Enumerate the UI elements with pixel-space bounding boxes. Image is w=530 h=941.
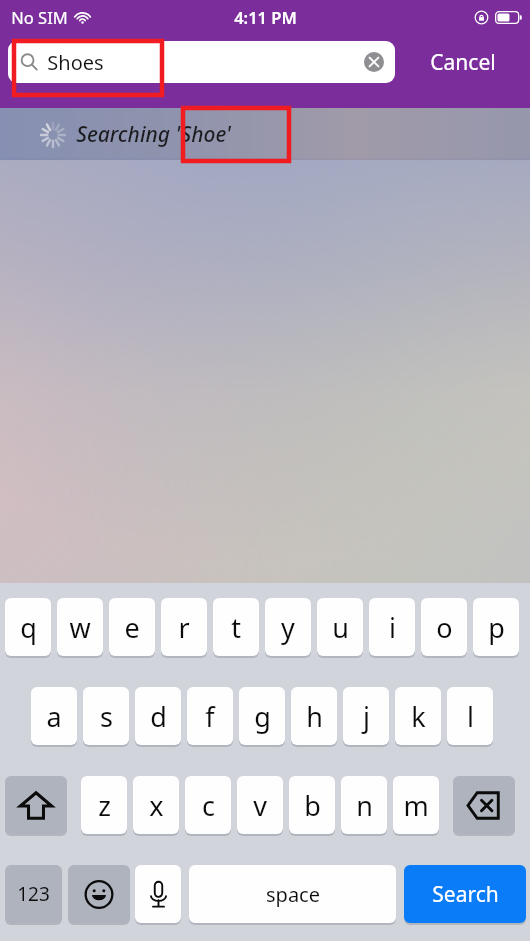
staticText: Shoes	[47, 49, 104, 76]
button[interactable]: e	[109, 597, 155, 659]
button[interactable]: o	[421, 597, 467, 659]
staticText: 4:11 PM	[234, 6, 297, 28]
button[interactable]: r	[161, 597, 207, 659]
staticText: Search	[432, 880, 499, 909]
staticText: z	[98, 787, 111, 824]
staticText: a	[46, 698, 62, 735]
button[interactable]: Search	[404, 864, 526, 926]
button[interactable]: x	[133, 775, 179, 837]
staticText: t	[231, 609, 241, 646]
button[interactable]: Shoes	[8, 41, 395, 83]
staticText: l	[467, 698, 474, 735]
staticText: v	[253, 787, 267, 824]
staticText: b	[304, 787, 321, 824]
button[interactable]: v	[237, 775, 283, 837]
button[interactable]: d	[135, 686, 181, 748]
staticText: o	[436, 609, 453, 646]
staticText: u	[332, 609, 349, 646]
button[interactable]: Clear text	[360, 48, 388, 76]
staticText: k	[411, 698, 426, 735]
button[interactable]: Emoji	[68, 864, 130, 926]
staticText: space	[266, 881, 320, 908]
button[interactable]: f	[187, 686, 233, 748]
button[interactable]: p	[473, 597, 519, 659]
button[interactable]: t	[213, 597, 259, 659]
staticText: Cancel	[430, 48, 496, 77]
button[interactable]: m	[393, 775, 439, 837]
button[interactable]: a	[31, 686, 77, 748]
staticText: f	[205, 698, 215, 735]
staticText: 123	[17, 881, 50, 907]
button[interactable]: Shift	[5, 775, 67, 837]
staticText: p	[488, 609, 505, 646]
staticText: d	[150, 698, 167, 735]
staticText: w	[69, 609, 91, 646]
button[interactable]: n	[341, 775, 387, 837]
button[interactable]: Cancel	[395, 34, 530, 90]
button[interactable]: s	[83, 686, 129, 748]
button[interactable]: u	[317, 597, 363, 659]
staticText: h	[306, 698, 323, 735]
button[interactable]: z	[81, 775, 127, 837]
staticText: i	[389, 609, 396, 646]
staticText: g	[254, 698, 271, 735]
staticText: x	[149, 787, 164, 824]
staticText: m	[403, 787, 429, 824]
button[interactable]: q	[5, 597, 51, 659]
button[interactable]: i	[369, 597, 415, 659]
button[interactable]: y	[265, 597, 311, 659]
button[interactable]: Delete	[453, 775, 515, 837]
staticText: r	[178, 609, 190, 646]
staticText: n	[356, 787, 373, 824]
button[interactable]: g	[239, 686, 285, 748]
staticText: c	[202, 787, 215, 824]
button[interactable]: w	[57, 597, 103, 659]
button[interactable]: k	[395, 686, 441, 748]
staticText: j	[363, 698, 370, 735]
button[interactable]: c	[185, 775, 231, 837]
button[interactable]: Dictate	[135, 864, 181, 926]
button[interactable]: b	[289, 775, 335, 837]
staticText: No SIM	[11, 6, 68, 28]
button[interactable]: 123	[5, 864, 62, 926]
staticText: e	[124, 609, 140, 646]
button[interactable]: space	[189, 864, 396, 926]
button[interactable]: h	[291, 686, 337, 748]
staticText: Searching 'Shoe'	[76, 120, 231, 149]
staticText: y	[281, 609, 295, 646]
button[interactable]: l	[447, 686, 493, 748]
staticText: s	[100, 698, 113, 735]
staticText: q	[20, 609, 37, 646]
button[interactable]: j	[343, 686, 389, 748]
